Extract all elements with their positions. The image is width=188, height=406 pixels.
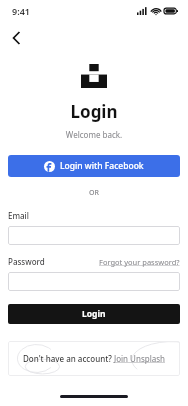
button[interactable]: Back (4, 26, 28, 50)
staticText: 9:41 (12, 5, 30, 17)
staticText: Email (8, 210, 29, 221)
button[interactable]: Join Unsplash (114, 353, 165, 364)
staticText: Forgot your password? (99, 257, 180, 267)
staticText: Password (8, 256, 45, 267)
staticText: Login with Facebook (60, 160, 144, 172)
staticText: Welcome back. (0, 129, 188, 140)
button[interactable]: Don't have an account? (8, 341, 180, 376)
button[interactable]: Login with Facebook (8, 155, 180, 177)
staticText: Don't have an account? (23, 353, 114, 364)
staticText: OR (0, 188, 188, 198)
staticText: Login (0, 100, 188, 123)
button[interactable]: Email field (8, 226, 180, 245)
staticText: Login (82, 308, 106, 320)
button[interactable]: Forgot your password? (99, 257, 180, 267)
button[interactable]: Login (8, 304, 180, 324)
button[interactable]: Password field (8, 272, 180, 291)
